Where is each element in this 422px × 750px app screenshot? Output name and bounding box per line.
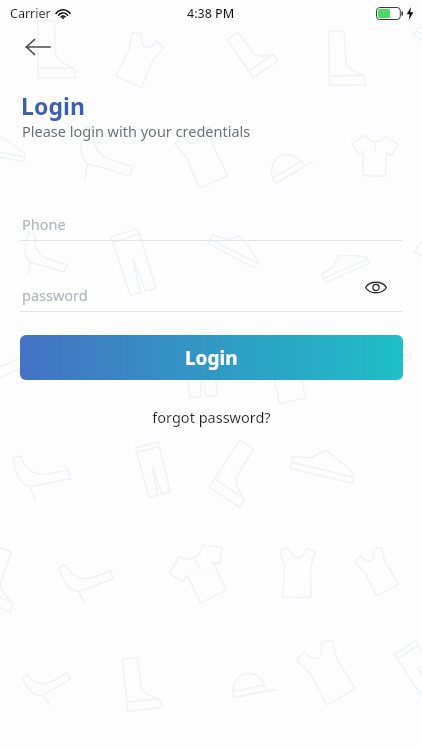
button[interactable]: Phone	[20, 208, 402, 242]
staticText: Login	[185, 345, 238, 371]
button[interactable]: Login	[20, 335, 403, 380]
button[interactable]: password	[20, 279, 360, 313]
staticText: Carrier	[10, 5, 51, 22]
staticText: Login	[21, 90, 86, 121]
button[interactable]: Show password	[358, 270, 394, 304]
button[interactable]: Back	[16, 30, 60, 64]
staticText: 4:38 PM	[187, 5, 235, 22]
staticText: Please login with your credentials	[22, 121, 251, 141]
button[interactable]: forgot password?	[0, 404, 422, 430]
staticText: forgot password?	[152, 407, 271, 427]
staticText: Phone	[22, 214, 66, 234]
staticText: password	[22, 285, 88, 305]
